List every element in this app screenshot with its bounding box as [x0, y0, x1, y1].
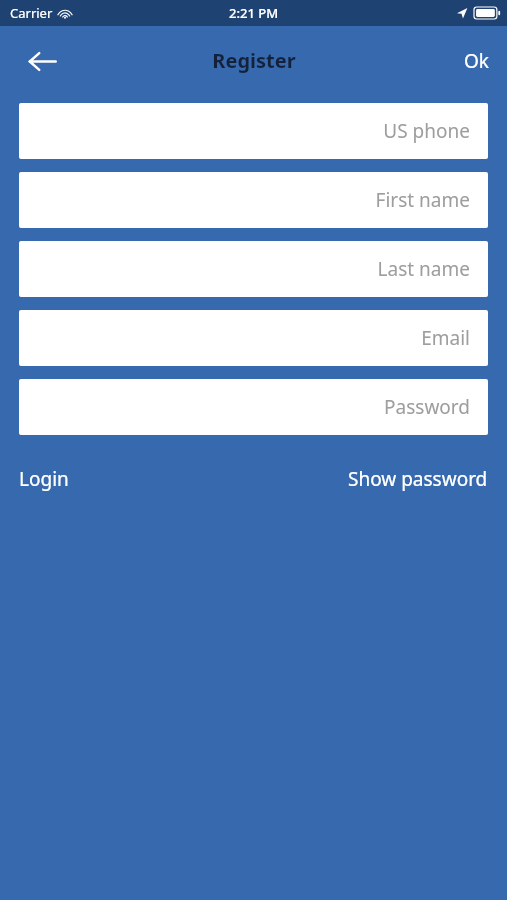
button[interactable]: Back	[20, 39, 64, 83]
button[interactable]: Show password	[348, 462, 488, 496]
staticText: Register	[212, 47, 296, 74]
button[interactable]: US phone	[19, 103, 488, 159]
button[interactable]: Login	[19, 462, 69, 496]
button[interactable]: Email	[19, 310, 488, 366]
staticText: Password	[384, 394, 470, 420]
staticText: US phone	[383, 118, 470, 144]
button[interactable]: Ok	[446, 36, 507, 86]
staticText: 2:21 PM	[229, 4, 279, 22]
staticText: Email	[421, 325, 470, 351]
button[interactable]: Password	[19, 379, 488, 435]
staticText: Last name	[377, 256, 470, 282]
staticText: First name	[375, 187, 470, 213]
button[interactable]: Last name	[19, 241, 488, 297]
staticText: Login	[19, 466, 69, 492]
staticText: Carrier	[10, 4, 53, 22]
button[interactable]: First name	[19, 172, 488, 228]
staticText: Ok	[464, 48, 489, 74]
staticText: Show password	[348, 466, 488, 492]
